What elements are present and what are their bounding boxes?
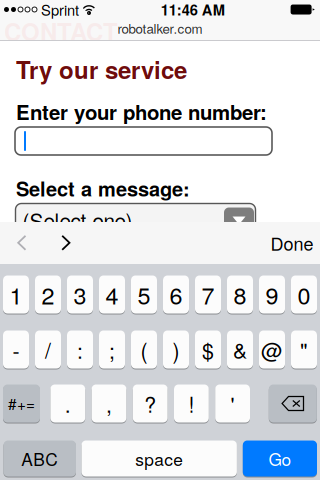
button[interactable]: $ — [195, 330, 221, 369]
button[interactable]: (Select one) — [15, 203, 255, 233]
button[interactable]: 1 — [3, 275, 29, 314]
staticText: Try our service — [16, 52, 187, 86]
staticText: 4 — [105, 278, 118, 311]
staticText: & — [233, 334, 247, 365]
staticText: (Select one) — [22, 205, 132, 234]
staticText: robotalker.com — [117, 18, 202, 38]
button[interactable]: - — [3, 330, 29, 369]
button[interactable]: 2 — [35, 275, 61, 314]
staticText: 8 — [233, 278, 246, 311]
button[interactable]: " — [291, 330, 317, 369]
button[interactable]: Go — [243, 440, 317, 477]
staticText: 2 — [41, 278, 54, 311]
staticText: " — [300, 334, 308, 365]
button[interactable]: #+= — [3, 384, 40, 423]
button[interactable]: Previous form field — [0, 222, 44, 264]
staticText: 3 — [73, 278, 86, 311]
staticText: 6 — [169, 278, 182, 311]
staticText: ABC — [21, 446, 58, 471]
button[interactable]: robotalker.com — [0, 18, 320, 38]
button[interactable]: Next form field — [44, 222, 88, 264]
staticText: ( — [140, 334, 147, 365]
button[interactable]: Delete — [269, 384, 317, 423]
staticText: , — [106, 388, 112, 419]
staticText: 11:46 AM — [161, 0, 225, 20]
button[interactable]: 5 — [131, 275, 157, 314]
button[interactable]: 7 — [195, 275, 221, 314]
staticText: ! — [188, 388, 194, 419]
button[interactable]: , — [92, 384, 126, 423]
staticText: / — [45, 334, 51, 365]
staticText: Sprint — [41, 0, 79, 20]
staticText: @ — [261, 334, 283, 365]
button[interactable]: : — [67, 330, 93, 369]
staticText: #+= — [8, 392, 35, 414]
staticText: Select a message: — [16, 174, 190, 203]
staticText: Go — [268, 446, 291, 471]
staticText: $ — [202, 334, 214, 365]
button[interactable]: ? — [133, 384, 168, 423]
button[interactable]: @ — [259, 330, 285, 369]
button[interactable]: ( — [131, 330, 157, 369]
staticText: space — [135, 446, 183, 471]
button[interactable]: 3 — [67, 275, 93, 314]
staticText: - — [12, 334, 19, 365]
staticText: : — [77, 334, 83, 365]
staticText: 5 — [137, 278, 150, 311]
button[interactable]: & — [227, 330, 253, 369]
button[interactable]: Done — [264, 222, 320, 264]
button[interactable]: ABC — [3, 440, 76, 477]
staticText: ; — [109, 334, 115, 365]
button[interactable]: space — [81, 440, 237, 477]
staticText: CONTACT — [4, 14, 118, 48]
staticText: 0 — [297, 278, 310, 311]
button[interactable]: ' — [215, 384, 250, 423]
staticText: 1 — [9, 278, 22, 311]
staticText: . — [65, 388, 71, 419]
staticText: Enter your phone number: — [16, 97, 267, 126]
button[interactable]: ) — [163, 330, 189, 369]
button[interactable]: / — [35, 330, 61, 369]
button[interactable]: 4 — [99, 275, 125, 314]
staticText: 7 — [201, 278, 214, 311]
staticText: Done — [270, 230, 313, 256]
button[interactable]: 8 — [227, 275, 253, 314]
button[interactable]: ; — [99, 330, 125, 369]
button[interactable]: 9 — [259, 275, 285, 314]
button[interactable]: . — [50, 384, 85, 423]
staticText: 9 — [265, 278, 278, 311]
staticText: ' — [231, 388, 235, 419]
button[interactable]: 0 — [291, 275, 317, 314]
button[interactable]: ! — [174, 384, 209, 423]
staticText: ) — [172, 334, 179, 365]
staticText: ? — [144, 388, 156, 419]
button[interactable]: 6 — [163, 275, 189, 314]
